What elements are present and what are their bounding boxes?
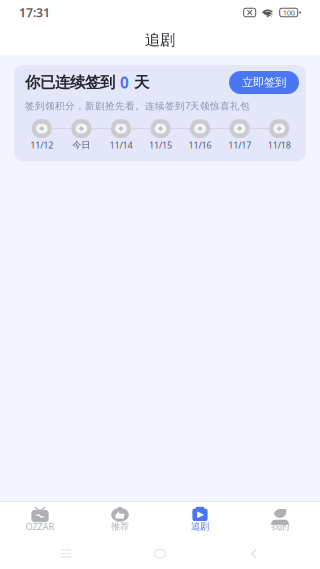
staticText: 天 xyxy=(129,73,149,92)
staticText: 11/17 xyxy=(228,139,251,151)
staticText: 0 xyxy=(120,72,129,93)
staticText: 今日 xyxy=(72,139,90,151)
staticText: 11/14 xyxy=(109,139,132,151)
staticText: 签到领积分，新剧抢先看。连续签到7天领惊喜礼包 xyxy=(25,99,250,112)
button[interactable]: Recents xyxy=(38,539,94,567)
button[interactable]: 追剧 xyxy=(160,501,240,537)
staticText: 追剧 xyxy=(191,521,209,532)
button[interactable]: 我的 xyxy=(240,501,320,537)
button[interactable]: OZZAR xyxy=(0,501,80,537)
staticText: 11/15 xyxy=(149,139,172,151)
button[interactable]: 推荐 xyxy=(80,501,160,537)
staticText: 推荐 xyxy=(111,521,129,532)
staticText: 11/16 xyxy=(189,139,212,151)
button[interactable]: 立即签到 xyxy=(229,71,299,94)
staticText: 你已连续签到 xyxy=(25,73,120,92)
button[interactable]: Home xyxy=(132,539,188,567)
staticText: 11/12 xyxy=(30,139,53,151)
staticText: 17:31 xyxy=(19,4,50,21)
staticText: 立即签到 xyxy=(242,75,286,90)
staticText: OZZAR xyxy=(25,520,54,533)
staticText: 追剧 xyxy=(145,30,175,49)
staticText: 我的 xyxy=(271,521,289,532)
staticText: 100 xyxy=(283,7,295,18)
staticText: 11/18 xyxy=(268,139,291,151)
